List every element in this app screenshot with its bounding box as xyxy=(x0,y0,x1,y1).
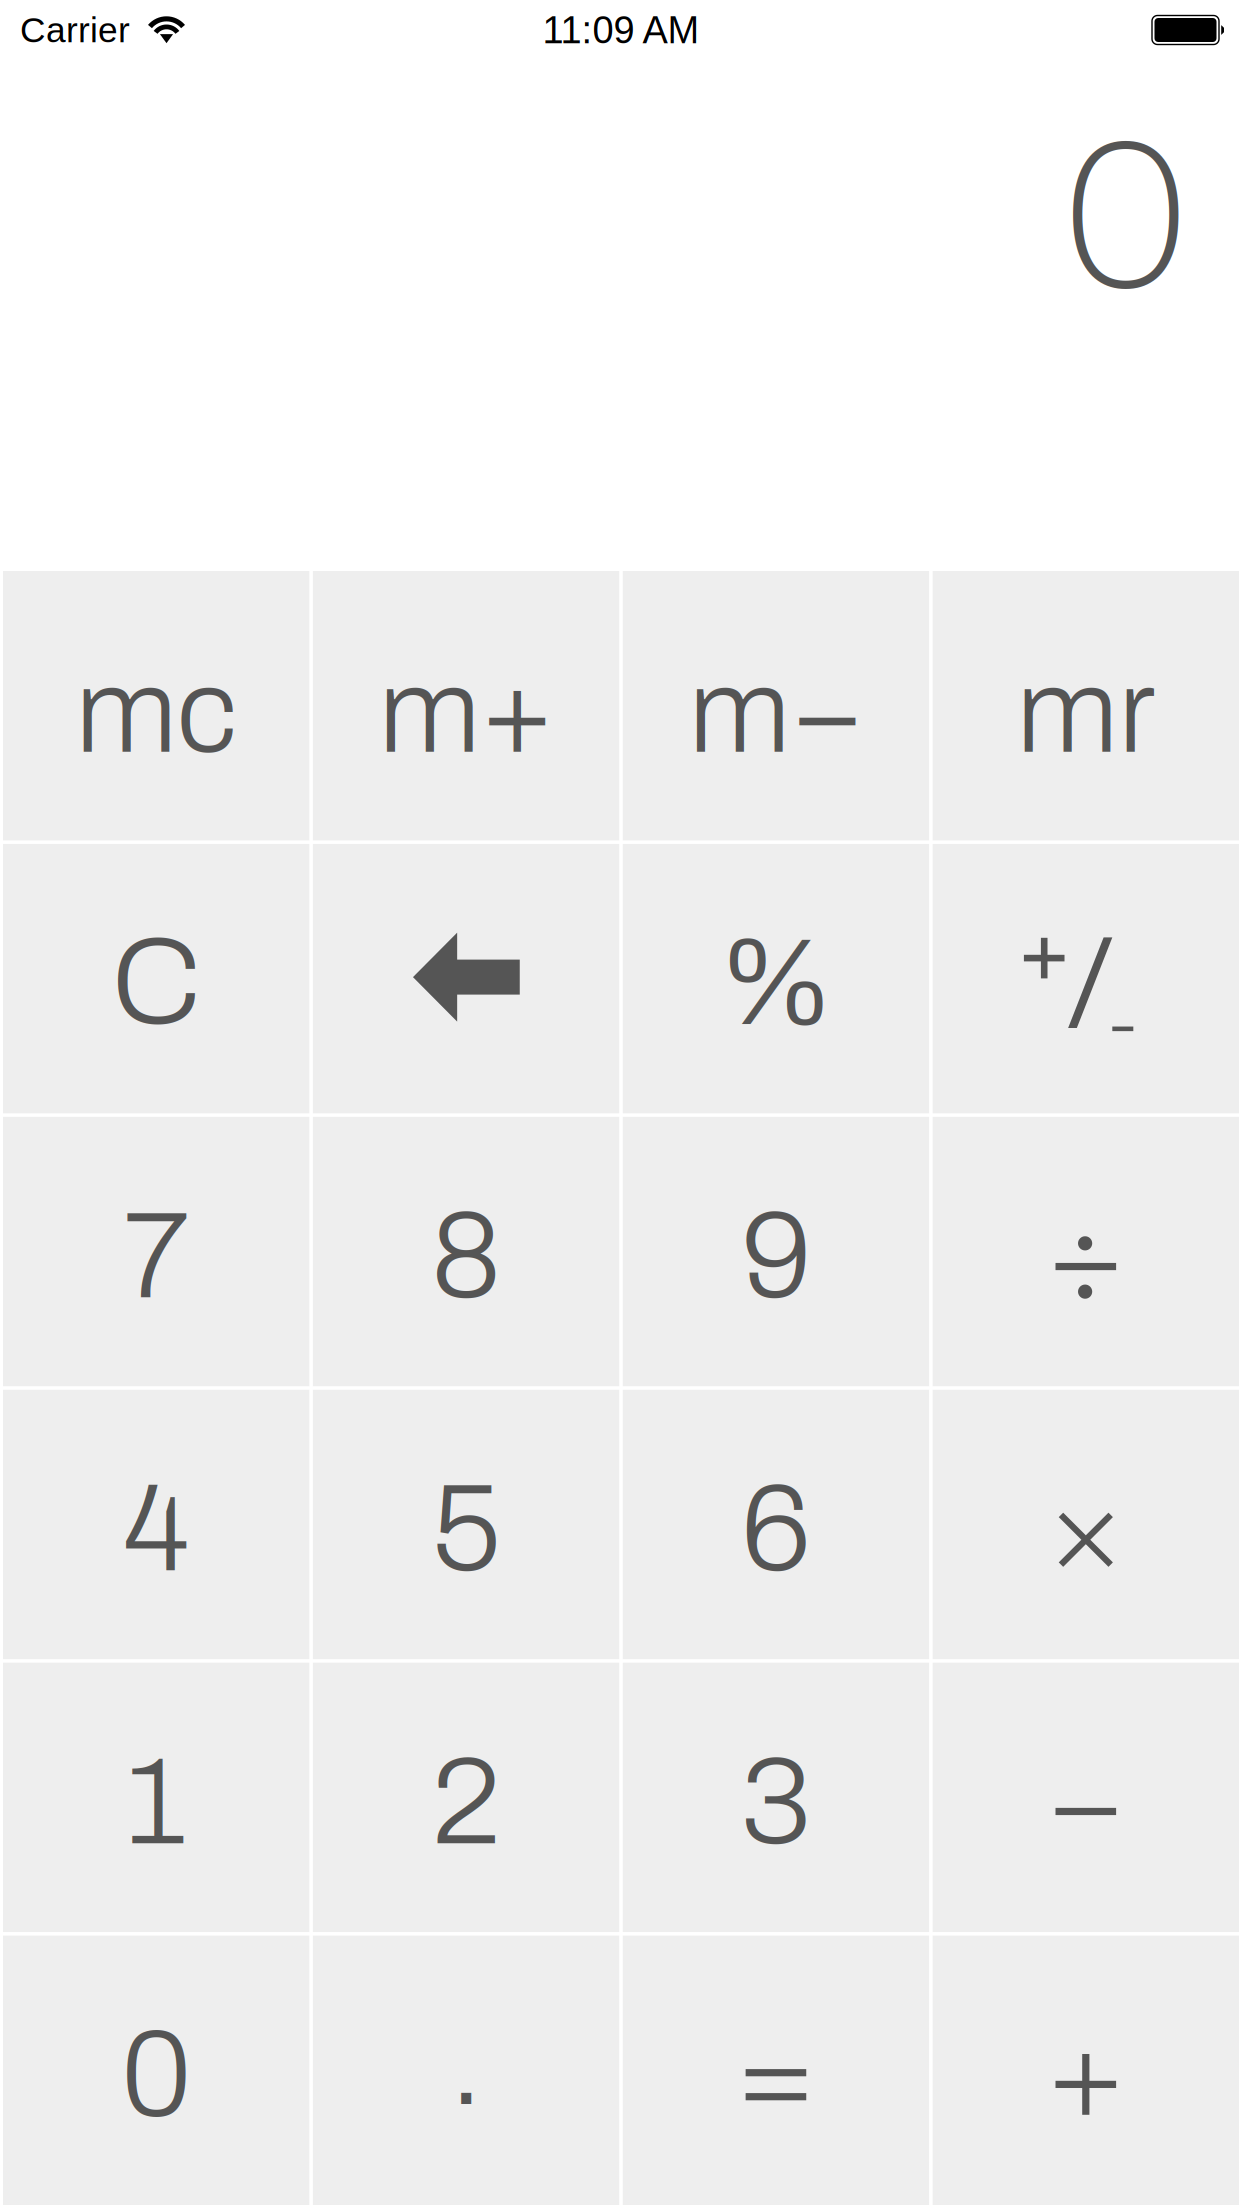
button[interactable]: 2 xyxy=(313,1663,619,1932)
button[interactable]: 0 xyxy=(3,1936,309,2205)
staticText: mc xyxy=(75,648,237,777)
staticText: 0 xyxy=(1060,69,1191,347)
button[interactable]: 4 xyxy=(3,1390,309,1659)
staticText: 11:09 AM xyxy=(542,9,699,51)
staticText: 3 xyxy=(741,1735,811,1869)
button[interactable]: 6 xyxy=(623,1390,929,1659)
staticText: 8 xyxy=(431,1190,501,1323)
staticText: Carrier xyxy=(20,10,130,50)
button[interactable]: 1 xyxy=(3,1663,309,1932)
staticText: m− xyxy=(688,648,863,777)
staticText: 6 xyxy=(741,1462,811,1596)
staticText: m+ xyxy=(379,648,554,777)
staticText: mr xyxy=(1016,648,1155,777)
button[interactable]: Divide xyxy=(933,1117,1239,1386)
button[interactable]: Plus Minus xyxy=(933,844,1239,1113)
staticText: 9 xyxy=(741,1190,811,1323)
button[interactable]: 9 xyxy=(623,1117,929,1386)
button[interactable]: m+ xyxy=(313,571,619,840)
staticText: 0 xyxy=(121,2008,191,2142)
button[interactable]: mr xyxy=(933,571,1239,840)
staticText: . xyxy=(450,1996,482,2130)
staticText: 2 xyxy=(432,1735,501,1869)
staticText: 7 xyxy=(123,1190,189,1323)
staticText: 4 xyxy=(123,1462,190,1596)
button[interactable]: m− xyxy=(623,571,929,840)
button[interactable]: . xyxy=(313,1936,619,2205)
button[interactable]: Equals xyxy=(623,1936,929,2205)
button[interactable]: 7 xyxy=(3,1117,309,1386)
button[interactable]: Minus xyxy=(933,1663,1239,1932)
staticText: % xyxy=(718,917,833,1050)
button[interactable]: Backspace xyxy=(313,844,619,1113)
staticText: 5 xyxy=(431,1462,501,1596)
button[interactable]: 5 xyxy=(313,1390,619,1659)
button[interactable]: 3 xyxy=(623,1663,929,1932)
button[interactable]: 8 xyxy=(313,1117,619,1386)
staticText: C xyxy=(111,916,201,1049)
button[interactable]: Plus xyxy=(933,1936,1239,2205)
button[interactable]: % xyxy=(623,844,929,1113)
button[interactable]: mc xyxy=(3,571,309,840)
staticText: 1 xyxy=(126,1735,186,1869)
button[interactable]: Multiply xyxy=(933,1390,1239,1659)
button[interactable]: C xyxy=(3,844,309,1113)
